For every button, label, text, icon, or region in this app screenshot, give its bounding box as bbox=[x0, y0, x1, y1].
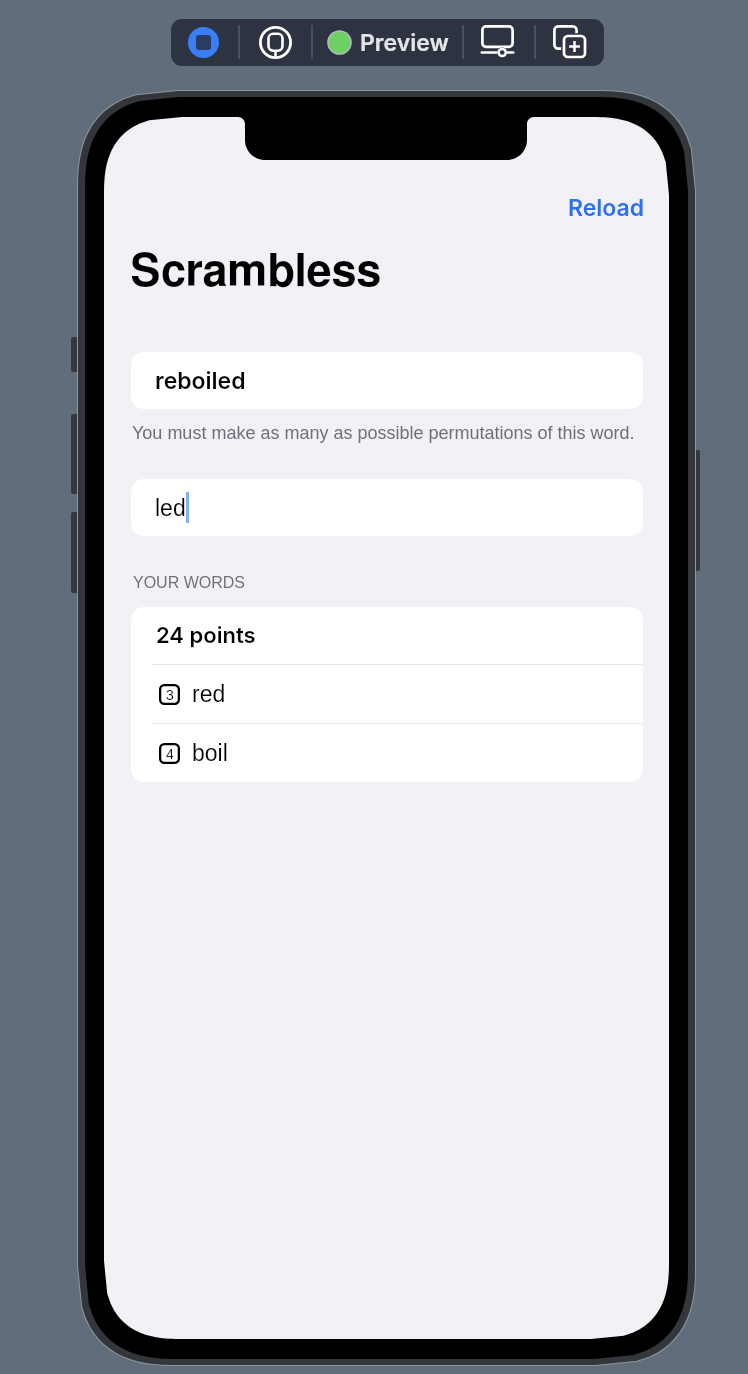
staticText: reboiled bbox=[155, 367, 246, 395]
button[interactable]: Live preview bbox=[188, 27, 219, 58]
staticText: boil bbox=[192, 740, 228, 766]
staticText: Reload bbox=[568, 194, 645, 222]
staticText: 24 points bbox=[156, 622, 256, 649]
button[interactable]: 24 points bbox=[131, 607, 643, 664]
button[interactable]: 4 bbox=[131, 724, 643, 782]
staticText: Preview bbox=[360, 29, 449, 57]
staticText: led bbox=[155, 495, 186, 521]
staticText: YOUR WORDS bbox=[133, 574, 245, 592]
button[interactable]: Add preview bbox=[553, 25, 586, 58]
staticText: Scrambless bbox=[130, 250, 382, 295]
staticText: 3 bbox=[166, 687, 174, 703]
button[interactable]: Reload bbox=[558, 184, 655, 232]
staticText: red bbox=[192, 681, 226, 707]
button[interactable]: Preview canvas options bbox=[481, 25, 514, 58]
button[interactable]: Preview bbox=[327, 19, 449, 66]
button[interactable]: led bbox=[131, 479, 643, 536]
staticText: 4 bbox=[166, 746, 174, 762]
button[interactable]: 3 bbox=[131, 665, 643, 723]
staticText: You must make as many as possible permut… bbox=[132, 423, 635, 443]
button[interactable]: Device settings bbox=[259, 26, 292, 59]
